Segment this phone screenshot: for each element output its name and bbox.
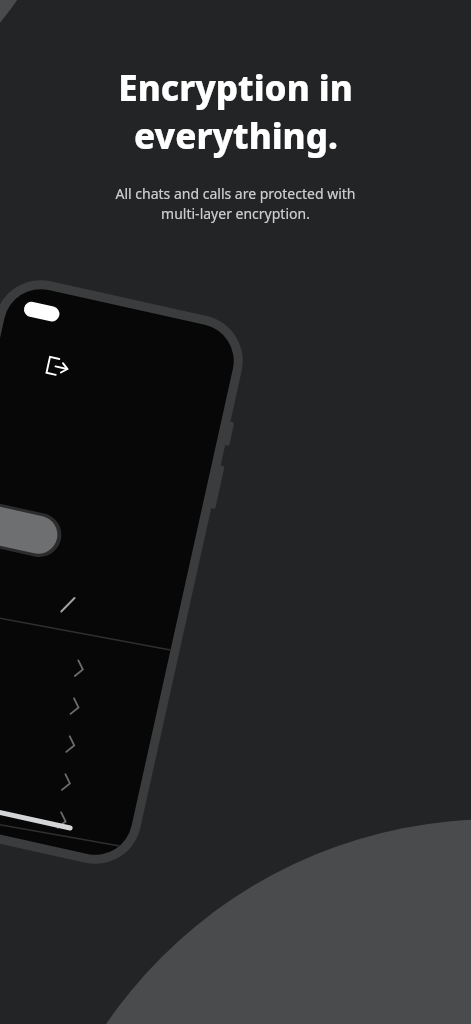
button[interactable]: Settings screen preview (0, 0, 471, 1024)
staticText: everything. (134, 112, 338, 160)
staticText: Encryption in (118, 64, 353, 112)
staticText: All chats and calls are protected with m… (115, 184, 356, 223)
